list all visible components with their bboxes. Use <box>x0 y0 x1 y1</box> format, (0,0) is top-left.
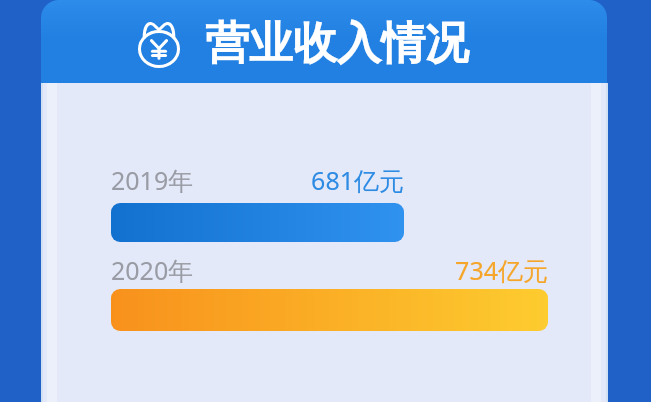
staticText: 681亿元 <box>254 163 404 197</box>
staticText: 2020年 <box>111 253 194 287</box>
staticText: 营业收入情况 <box>205 16 469 71</box>
staticText: 734亿元 <box>398 253 548 287</box>
button[interactable]: 营业收入 <box>133 17 185 69</box>
staticText: 2019年 <box>111 163 194 197</box>
button[interactable] <box>41 0 607 83</box>
button[interactable] <box>111 289 548 331</box>
button[interactable] <box>111 203 404 242</box>
